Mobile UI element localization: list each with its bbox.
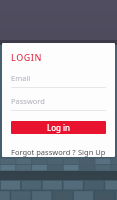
button[interactable]: Log in — [11, 121, 106, 134]
button[interactable]: Forgot password ? — [11, 147, 76, 157]
staticText: Email — [11, 73, 31, 83]
staticText: Forgot password ? — [11, 147, 76, 157]
staticText: Password — [11, 96, 45, 106]
button[interactable]: Sign Up — [78, 147, 106, 157]
staticText: LOGIN — [11, 51, 42, 63]
staticText: Sign Up — [78, 147, 106, 157]
button[interactable]: Email — [11, 73, 106, 88]
staticText: Log in — [47, 122, 71, 133]
button[interactable]: Password — [11, 96, 106, 111]
